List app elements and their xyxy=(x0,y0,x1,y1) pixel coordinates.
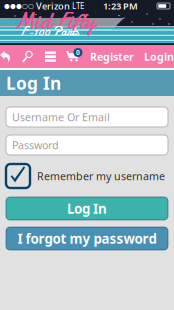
button[interactable]: Menu xyxy=(39,45,62,68)
button[interactable]: Shopping cart xyxy=(62,45,85,68)
staticText: Log In xyxy=(67,200,107,217)
button[interactable]: Back xyxy=(0,45,16,68)
button[interactable]: Login xyxy=(139,45,174,68)
staticText: I forgot my password xyxy=(17,230,156,247)
button[interactable]: Remember my username xyxy=(6,155,168,188)
staticText: Register xyxy=(90,49,134,64)
staticText: Remember my username xyxy=(37,169,165,183)
staticText: Password xyxy=(12,138,59,152)
staticText: Login xyxy=(144,49,174,64)
button[interactable]: Register xyxy=(85,45,139,68)
staticText: F-100 Parts xyxy=(21,22,79,41)
staticText: Mid Fifty xyxy=(13,4,96,37)
button[interactable]: Search xyxy=(16,45,39,68)
staticText: ●●●○○ xyxy=(4,2,34,10)
staticText: 0 xyxy=(76,48,80,57)
staticText: LTE xyxy=(72,1,84,11)
button[interactable]: Log In xyxy=(6,197,168,220)
button[interactable]: I forgot my password xyxy=(6,227,168,250)
staticText: 1:23 PM xyxy=(103,0,138,12)
staticText: Verizon xyxy=(34,0,72,12)
staticText: Username Or Email xyxy=(12,110,110,124)
staticText: Log In xyxy=(6,71,61,94)
